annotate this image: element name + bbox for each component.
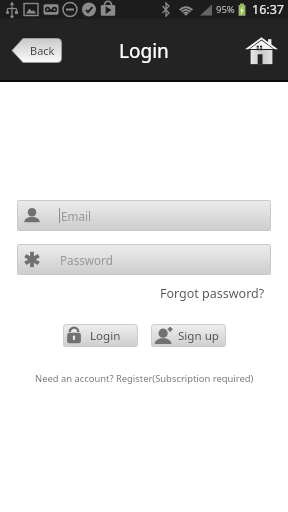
staticText: Need an account? Register(Subscription r… — [35, 372, 254, 385]
button[interactable]: Home — [245, 36, 278, 65]
staticText: Forgot password? — [160, 285, 265, 302]
staticText: Back — [30, 43, 55, 58]
staticText: Password — [60, 252, 113, 268]
button[interactable]: Sign up — [151, 324, 226, 347]
button[interactable]: Back — [12, 38, 62, 63]
staticText: Sign up — [178, 328, 219, 344]
button[interactable]: Password — [17, 244, 271, 275]
staticText: 16:37 — [252, 1, 284, 18]
button[interactable]: Login — [63, 324, 138, 347]
staticText: Login — [90, 328, 121, 344]
button[interactable]: Email — [17, 200, 271, 231]
staticText: Email — [61, 208, 92, 224]
button[interactable]: Forgot password? — [160, 285, 265, 302]
staticText: 95% — [216, 3, 235, 16]
staticText: Login — [119, 38, 169, 64]
